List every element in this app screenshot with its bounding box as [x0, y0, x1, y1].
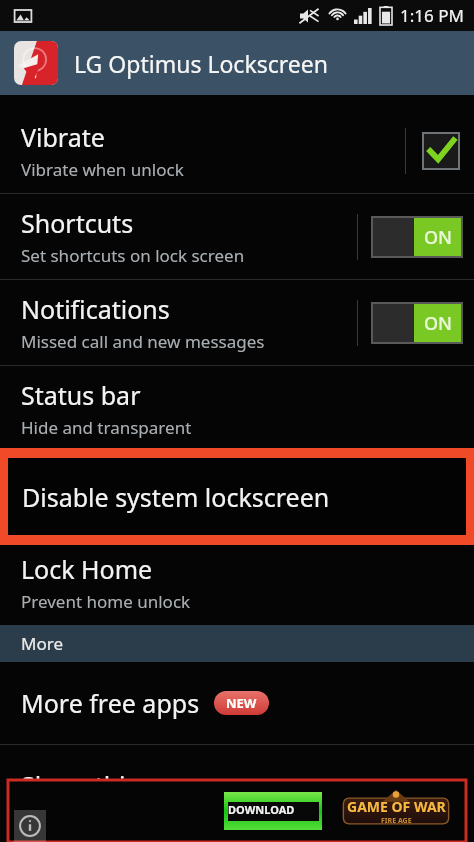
staticText: Vibrate when unlock [21, 158, 184, 181]
staticText: Missed call and new messages [21, 330, 265, 353]
button[interactable]: Status bar [0, 366, 474, 451]
button[interactable]: Share this app [0, 745, 474, 825]
staticText: 1:16 PM [400, 4, 464, 27]
button[interactable]: More free apps [0, 662, 474, 744]
staticText: Share this app [21, 768, 189, 802]
staticText: Shortcuts [21, 206, 134, 240]
staticText: Vibrate [21, 120, 105, 154]
staticText: LG Optimus Lockscreen [74, 48, 328, 79]
button[interactable]: Vibrate [0, 108, 474, 193]
button[interactable]: Vibrate checkbox [420, 130, 462, 172]
staticText: Hide and transparent [21, 416, 192, 439]
staticText: More [21, 632, 63, 655]
staticText: DOWNLOAD FREE [228, 802, 319, 821]
staticText: NEW [226, 694, 257, 712]
button[interactable]: Toggle on [372, 217, 462, 257]
staticText: GAME OF WAR [347, 797, 446, 816]
button[interactable]: Shortcuts [0, 194, 474, 279]
button[interactable]: Toggle on [372, 303, 462, 343]
staticText: More free apps [21, 686, 200, 720]
button[interactable]: LG Optimus Lockscreen [0, 31, 474, 95]
button[interactable]: Advertisement [8, 780, 466, 842]
staticText: Notifications [21, 292, 170, 326]
staticText: Status bar [21, 378, 141, 412]
staticText: Lock Home [21, 552, 153, 586]
button[interactable]: Disable system lockscreen [3, 453, 471, 540]
staticText: Set shortcuts on lock screen [21, 244, 245, 267]
staticText: ON [424, 225, 453, 250]
staticText: Prevent home unlock [21, 590, 191, 613]
staticText: FIRE AGE [381, 816, 412, 826]
staticText: Disable system lockscreen [22, 480, 330, 514]
staticText: ON [424, 311, 453, 336]
button[interactable]: Notifications [0, 280, 474, 365]
button[interactable]: Lock Home [0, 540, 474, 625]
